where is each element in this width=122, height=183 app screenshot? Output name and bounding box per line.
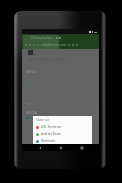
staticText: Bluetooth bbox=[41, 139, 55, 143]
button[interactable]: Recents bbox=[78, 144, 85, 151]
staticText: URL Shortener bbox=[41, 125, 62, 129]
button[interactable]: Back bbox=[36, 144, 43, 151]
staticText: Android Beam bbox=[41, 132, 62, 136]
staticText: PHOTOGRAPHY ACADEMY bbox=[28, 58, 66, 62]
button[interactable]: Android Beam bbox=[36, 132, 92, 136]
staticText: Share via bbox=[36, 118, 49, 122]
button[interactable]: URL Shortener bbox=[36, 125, 92, 129]
staticText: Home bbox=[26, 78, 35, 82]
staticText: MENU bbox=[26, 69, 37, 74]
staticText: SOCIAL bbox=[26, 110, 38, 115]
staticText: About bbox=[26, 85, 35, 89]
staticText: Photography a bbox=[31, 36, 54, 40]
staticText: Contact bbox=[26, 92, 38, 96]
button[interactable]: Contact bbox=[22, 92, 99, 96]
button[interactable]: Bluetooth bbox=[36, 139, 92, 143]
button[interactable]: About bbox=[22, 85, 99, 89]
staticText: Search bbox=[26, 102, 36, 106]
staticText: info@thesite.com bbox=[41, 43, 66, 47]
button[interactable]: Home bbox=[57, 144, 64, 151]
